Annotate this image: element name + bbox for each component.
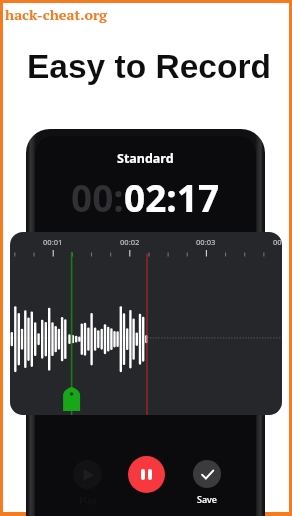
staticText: hack-cheat.org: [5, 5, 108, 24]
staticText: 02:17: [124, 172, 220, 222]
staticText: 00:: [71, 172, 124, 222]
staticText: 00:02: [120, 237, 140, 247]
staticText: Save: [197, 493, 218, 505]
staticText: 00:03: [196, 237, 216, 247]
button[interactable]: Pause recording: [128, 456, 165, 493]
button[interactable]: Play: [73, 460, 102, 506]
button[interactable]: Save: [193, 460, 221, 505]
staticText: Easy to Record: [27, 48, 271, 85]
staticText: 00:01: [43, 237, 63, 247]
staticText: Standard: [117, 150, 174, 167]
staticText: 00:04: [273, 237, 282, 247]
